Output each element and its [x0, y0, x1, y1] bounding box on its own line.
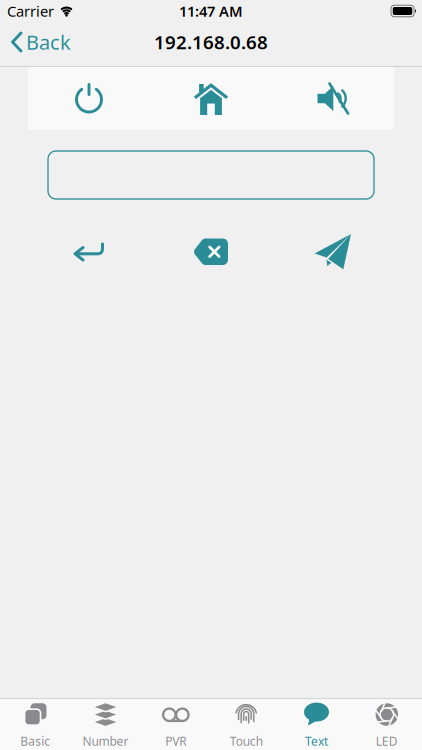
button[interactable]: Power [28, 83, 150, 114]
button[interactable]: Delete [150, 238, 272, 266]
staticText: Carrier [7, 1, 54, 21]
button[interactable]: Text input [0, 130, 422, 199]
staticText: Back [26, 29, 71, 55]
staticText: Touch [230, 733, 263, 749]
staticText: 192.168.0.68 [154, 30, 268, 54]
staticText: Text [305, 733, 328, 749]
button[interactable]: Return [28, 243, 150, 261]
button[interactable]: Back [0, 29, 71, 55]
staticText: 11:47 AM [179, 1, 243, 21]
staticText: LED [376, 733, 398, 749]
button[interactable]: Send [272, 234, 394, 270]
staticText: PVR [165, 733, 186, 749]
staticText: Number [82, 733, 128, 749]
button[interactable]: LED [352, 702, 422, 749]
button[interactable]: Basic [0, 702, 70, 749]
button[interactable]: Number [70, 702, 141, 749]
staticText: Basic [20, 733, 50, 749]
button[interactable]: Touch [211, 702, 281, 749]
button[interactable]: PVR [141, 702, 211, 749]
button[interactable]: Text [281, 702, 352, 749]
button[interactable]: Mute [272, 82, 394, 114]
button[interactable]: Home [150, 82, 272, 115]
